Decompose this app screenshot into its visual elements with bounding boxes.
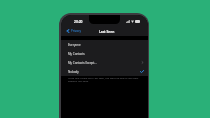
staticText: If you don't share your Last Seen, you w…	[68, 76, 144, 82]
button[interactable]: Everyone	[61, 40, 148, 49]
staticText: Privacy	[71, 29, 82, 33]
staticText: Nobody	[68, 70, 79, 74]
staticText: 20:20	[74, 19, 83, 23]
button[interactable]: My Contacts Except...	[61, 58, 148, 67]
staticText: Everyone	[68, 43, 81, 47]
button[interactable]: Privacy	[61, 29, 85, 33]
button[interactable]: Nobody	[61, 67, 148, 76]
staticText: My Contacts	[68, 52, 85, 56]
staticText: Last Seen	[99, 29, 115, 33]
button[interactable]: My Contacts	[61, 49, 148, 58]
staticText: My Contacts Except...	[68, 61, 97, 65]
